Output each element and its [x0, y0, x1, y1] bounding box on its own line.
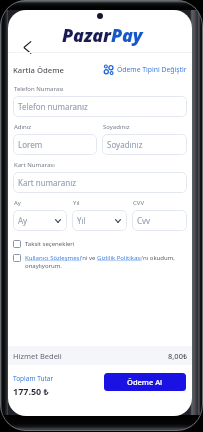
staticText: Hizmet Bedeli [13, 351, 62, 361]
button[interactable]: Yıl [72, 210, 127, 231]
button[interactable]: Telefon numaranız [13, 96, 187, 117]
staticText: Kullanıcı Sözleşmesi'ni ve Gizlilik Poli… [25, 254, 183, 270]
button[interactable]: Ödeme Al [104, 373, 186, 391]
button[interactable]: Taksit seçenekleri [13, 240, 75, 248]
button[interactable]: Ödeme Tipini Değiştir [103, 64, 187, 75]
staticText: Telefon numaranız [18, 101, 88, 112]
staticText: Pay [111, 23, 143, 48]
staticText: Soyadınız [103, 123, 130, 131]
staticText: Ödeme Al [127, 377, 163, 387]
staticText: Lorem [18, 139, 43, 150]
staticText: Kart numaranız [18, 177, 76, 188]
staticText: Ay [14, 199, 21, 207]
button[interactable]: Kullanıcı Sözleşmesi'ni ve Gizlilik Poli… [13, 254, 183, 270]
button[interactable]: Kart numaranız [13, 172, 187, 193]
button[interactable]: Lorem [13, 134, 97, 155]
button[interactable]: Soyadınız [102, 134, 187, 155]
staticText: Kart Numarası [14, 161, 55, 169]
button[interactable]: Cvv [132, 210, 187, 231]
staticText: 177.50 ₺ [13, 385, 49, 397]
staticText: Kartla Ödeme [13, 65, 64, 75]
staticText: Yıl [73, 199, 80, 207]
staticText: Pazar [62, 23, 111, 48]
staticText: Toplam Tutar [13, 374, 54, 383]
button[interactable]: Back [17, 37, 37, 57]
staticText: 8,00₺ [168, 351, 188, 361]
staticText: Ay [18, 215, 28, 226]
button[interactable]: Ay [13, 210, 67, 231]
staticText: Cvv [137, 215, 151, 226]
staticText: Taksit seçenekleri [25, 240, 75, 248]
staticText: CVV [133, 199, 144, 207]
staticText: Ödeme Tipini Değiştir [117, 65, 187, 74]
staticText: Adınız [14, 123, 32, 131]
staticText: Soyadınız [107, 139, 143, 150]
staticText: Yıl [77, 215, 86, 226]
staticText: Telefon Numarası [14, 85, 64, 93]
